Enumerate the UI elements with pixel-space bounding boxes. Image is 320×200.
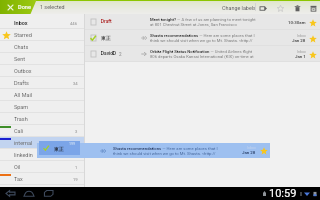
staticText: Chats xyxy=(14,44,29,50)
staticText: 14 xyxy=(73,153,78,158)
staticText: 446 xyxy=(70,21,78,26)
staticText: Jan 1 xyxy=(295,54,306,59)
staticText: 199 xyxy=(70,141,78,146)
button[interactable]: Sent xyxy=(0,53,84,65)
button[interactable]: Select conversation xyxy=(85,46,320,62)
staticText: 10:59 xyxy=(269,187,297,200)
button[interactable]: Select conversation xyxy=(85,14,320,30)
staticText: Drafts xyxy=(14,80,29,86)
button[interactable]: Inbox xyxy=(0,17,84,29)
button[interactable]: All Mail xyxy=(0,89,84,101)
button[interactable]: Tax xyxy=(0,173,84,185)
staticText: 10:30am xyxy=(288,20,306,25)
staticText: Shasta recommendations — Here are some p… xyxy=(150,33,257,43)
staticText: Done xyxy=(18,4,31,11)
button[interactable]: internal xyxy=(0,137,84,149)
staticText: Inbox xyxy=(14,20,28,26)
button[interactable]: Delete xyxy=(292,3,303,14)
button[interactable]: Select conversation xyxy=(85,30,320,46)
button[interactable]: Done xyxy=(0,0,34,14)
button[interactable]: Cali xyxy=(0,125,84,137)
button[interactable]: Drafts xyxy=(0,77,84,89)
staticText: All Mail xyxy=(14,92,33,98)
button[interactable]: Select conversation xyxy=(88,49,98,59)
button[interactable]: Labels xyxy=(258,3,269,14)
button[interactable]: Archive xyxy=(308,3,319,14)
staticText: 1 xyxy=(75,165,78,170)
button[interactable]: Select conversation xyxy=(88,33,98,43)
button[interactable]: Outbox xyxy=(0,65,84,77)
staticText: Spam xyxy=(14,104,29,110)
button[interactable]: Change labels xyxy=(222,5,256,11)
staticText: Starred xyxy=(14,32,32,38)
staticText: internal xyxy=(14,140,33,146)
staticText: Tax xyxy=(14,176,23,182)
staticText: Trash xyxy=(14,116,28,122)
button[interactable]: Oil xyxy=(0,161,84,173)
staticText: 1 selected xyxy=(40,4,65,10)
button[interactable]: Back xyxy=(4,187,17,200)
button[interactable]: Star xyxy=(307,33,318,44)
staticText: 3 xyxy=(75,129,78,134)
staticText: Draft xyxy=(101,19,112,25)
staticText: linkedin xyxy=(14,152,33,158)
staticText: Jan 28 xyxy=(292,38,306,43)
staticText: Inbox xyxy=(247,146,256,150)
button[interactable]: Select conversation xyxy=(88,17,98,27)
staticText: Shasta recommendations — Here are some p… xyxy=(113,146,220,156)
button[interactable]: Spam xyxy=(0,101,84,113)
staticText: Sent xyxy=(14,56,26,62)
staticText: 199 xyxy=(69,142,76,146)
button[interactable]: Star xyxy=(275,3,286,14)
button[interactable]: Trash xyxy=(0,113,84,125)
button[interactable]: Recent apps xyxy=(42,187,55,200)
button[interactable]: Starred xyxy=(0,29,84,41)
button[interactable]: Shasta recommendations — Here are some p… xyxy=(37,143,270,158)
staticText: 34 xyxy=(73,81,78,86)
button[interactable]: Star xyxy=(307,49,318,60)
button[interactable]: Chats xyxy=(0,41,84,53)
staticText: Outbox xyxy=(14,68,32,74)
staticText: 東正 xyxy=(54,146,64,152)
staticText: Inbox xyxy=(297,50,306,54)
button[interactable]: Star xyxy=(307,17,318,28)
staticText: Inbox xyxy=(297,34,306,38)
staticText: Jan 28 xyxy=(242,150,256,155)
staticText: Cali xyxy=(14,128,24,134)
staticText: 19 xyxy=(73,177,78,182)
staticText: Orbitz Flight Status Notification — Unit… xyxy=(150,49,257,59)
button[interactable]: linkedin xyxy=(0,149,84,161)
button[interactable]: Home xyxy=(22,187,35,200)
staticText: 東正 xyxy=(101,35,111,41)
staticText: 2 xyxy=(119,52,122,57)
staticText: Meet tonight? — A few of us are planning… xyxy=(150,17,257,27)
staticText: DavidD xyxy=(101,51,117,57)
staticText: Oil xyxy=(14,164,21,170)
